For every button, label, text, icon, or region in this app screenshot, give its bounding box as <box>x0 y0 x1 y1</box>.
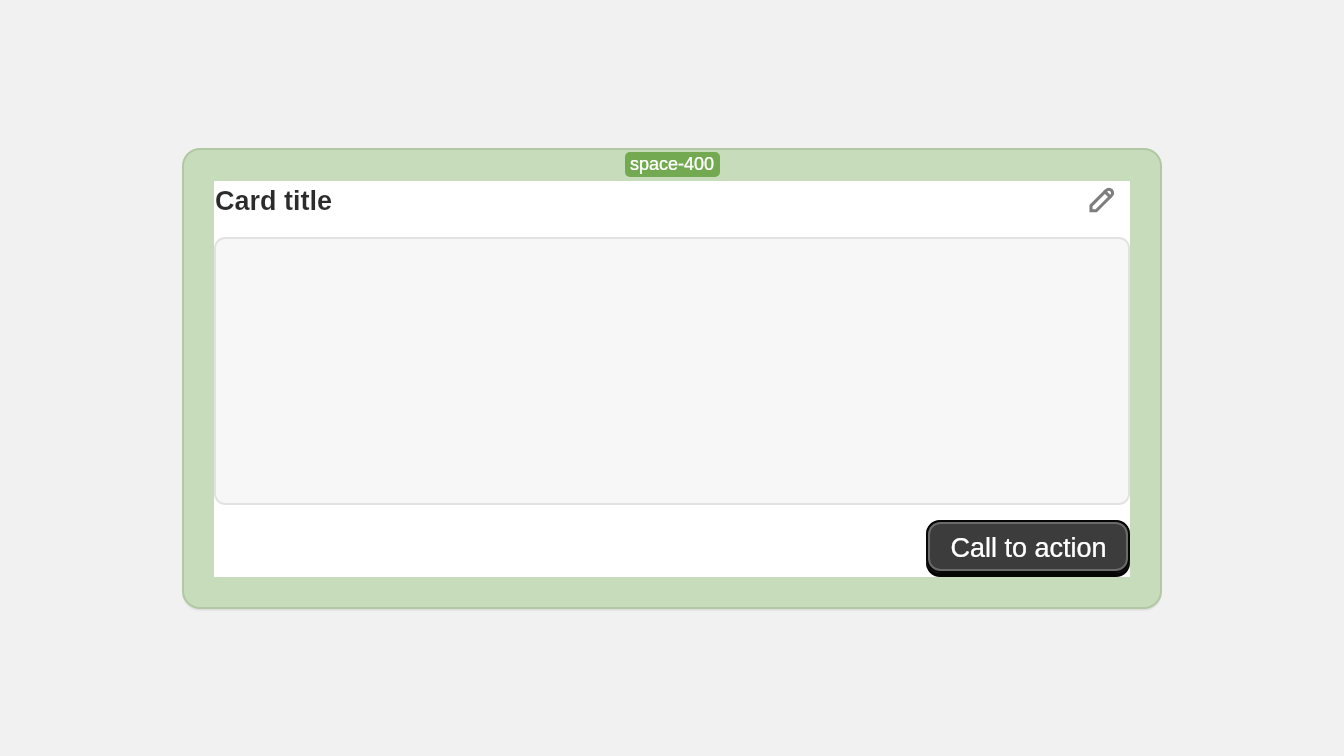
staticText: Card title <box>215 186 333 216</box>
button[interactable]: Edit <box>1084 183 1120 219</box>
button[interactable]: space-400 <box>625 152 720 177</box>
staticText: Call to action <box>950 533 1107 563</box>
staticText: space-400 <box>630 154 715 174</box>
button[interactable]: Call to action <box>926 520 1130 573</box>
